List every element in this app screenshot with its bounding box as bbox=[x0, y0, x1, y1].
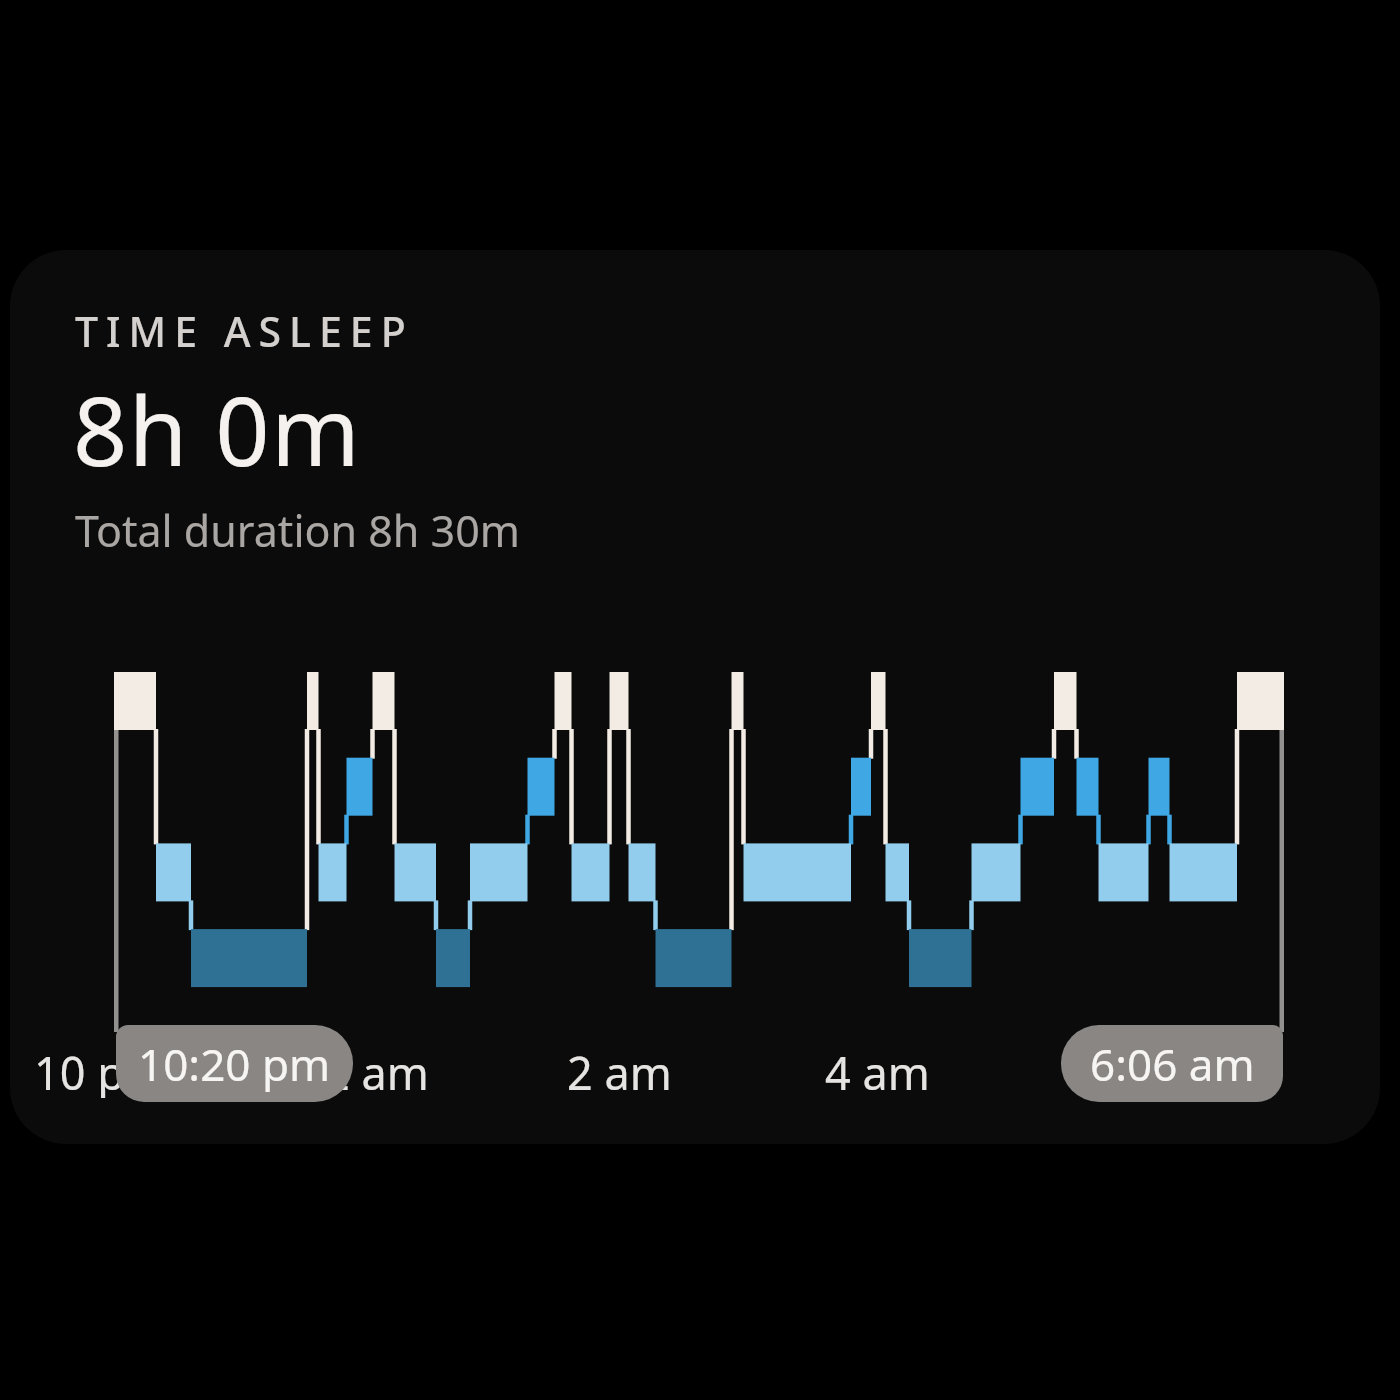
staticText: 6:06 am bbox=[1090, 1034, 1255, 1094]
staticText: TIME ASLEEP bbox=[75, 303, 414, 359]
staticText: 10 pm bbox=[34, 1042, 167, 1098]
staticText: 2 am bbox=[567, 1042, 672, 1098]
staticText: 12 am bbox=[298, 1042, 429, 1098]
staticText: 10:20 pm bbox=[138, 1034, 331, 1094]
button[interactable] bbox=[10, 250, 1380, 1144]
staticText: 8h 0m bbox=[73, 364, 362, 493]
staticText: 4 am bbox=[825, 1042, 930, 1098]
button[interactable]: 10:20 pm bbox=[116, 1025, 353, 1102]
staticText: Total duration 8h 30m bbox=[75, 501, 521, 560]
button[interactable]: 6:06 am bbox=[1061, 1025, 1283, 1102]
